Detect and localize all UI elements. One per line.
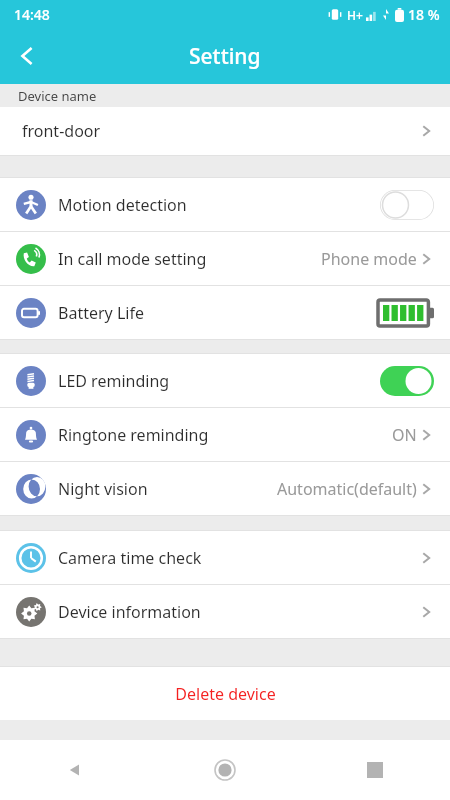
- staticText: ON: [392, 424, 417, 446]
- staticText: Automatic(default): [277, 478, 417, 500]
- staticText: H+: [347, 7, 363, 23]
- button[interactable]: Recents: [300, 740, 450, 800]
- button[interactable]: Delete device: [0, 667, 450, 720]
- button[interactable]: Camera time check: [0, 531, 450, 584]
- button[interactable]: Battery Life: [0, 286, 450, 339]
- staticText: Delete device: [175, 683, 276, 705]
- button[interactable]: Night vision: [0, 462, 450, 515]
- button[interactable]: front-door: [0, 107, 450, 155]
- button[interactable]: Toggle off: [380, 190, 434, 220]
- staticText: Ringtone reminding: [58, 424, 209, 446]
- button[interactable]: Motion detection: [0, 178, 450, 231]
- staticText: 14:48: [14, 5, 50, 24]
- button[interactable]: Back: [0, 28, 56, 84]
- staticText: Camera time check: [58, 547, 202, 569]
- staticText: front-door: [22, 120, 101, 142]
- staticText: In call mode setting: [58, 248, 207, 270]
- button[interactable]: In call mode setting: [0, 232, 450, 285]
- staticText: Device name: [18, 87, 97, 105]
- button[interactable]: LED reminding: [0, 354, 450, 407]
- button[interactable]: Ringtone reminding: [0, 408, 450, 461]
- button[interactable]: Device information: [0, 585, 450, 638]
- staticText: Battery Life: [58, 302, 144, 324]
- staticText: Night vision: [58, 478, 148, 500]
- staticText: LED reminding: [58, 370, 170, 392]
- button[interactable]: Toggle on: [380, 366, 434, 396]
- staticText: Device information: [58, 601, 201, 623]
- staticText: Phone mode: [321, 248, 417, 270]
- button[interactable]: Home: [150, 740, 300, 800]
- staticText: Motion detection: [58, 194, 187, 216]
- button[interactable]: Back: [0, 740, 150, 800]
- staticText: Setting: [189, 42, 261, 71]
- staticText: 18 %: [408, 5, 440, 24]
